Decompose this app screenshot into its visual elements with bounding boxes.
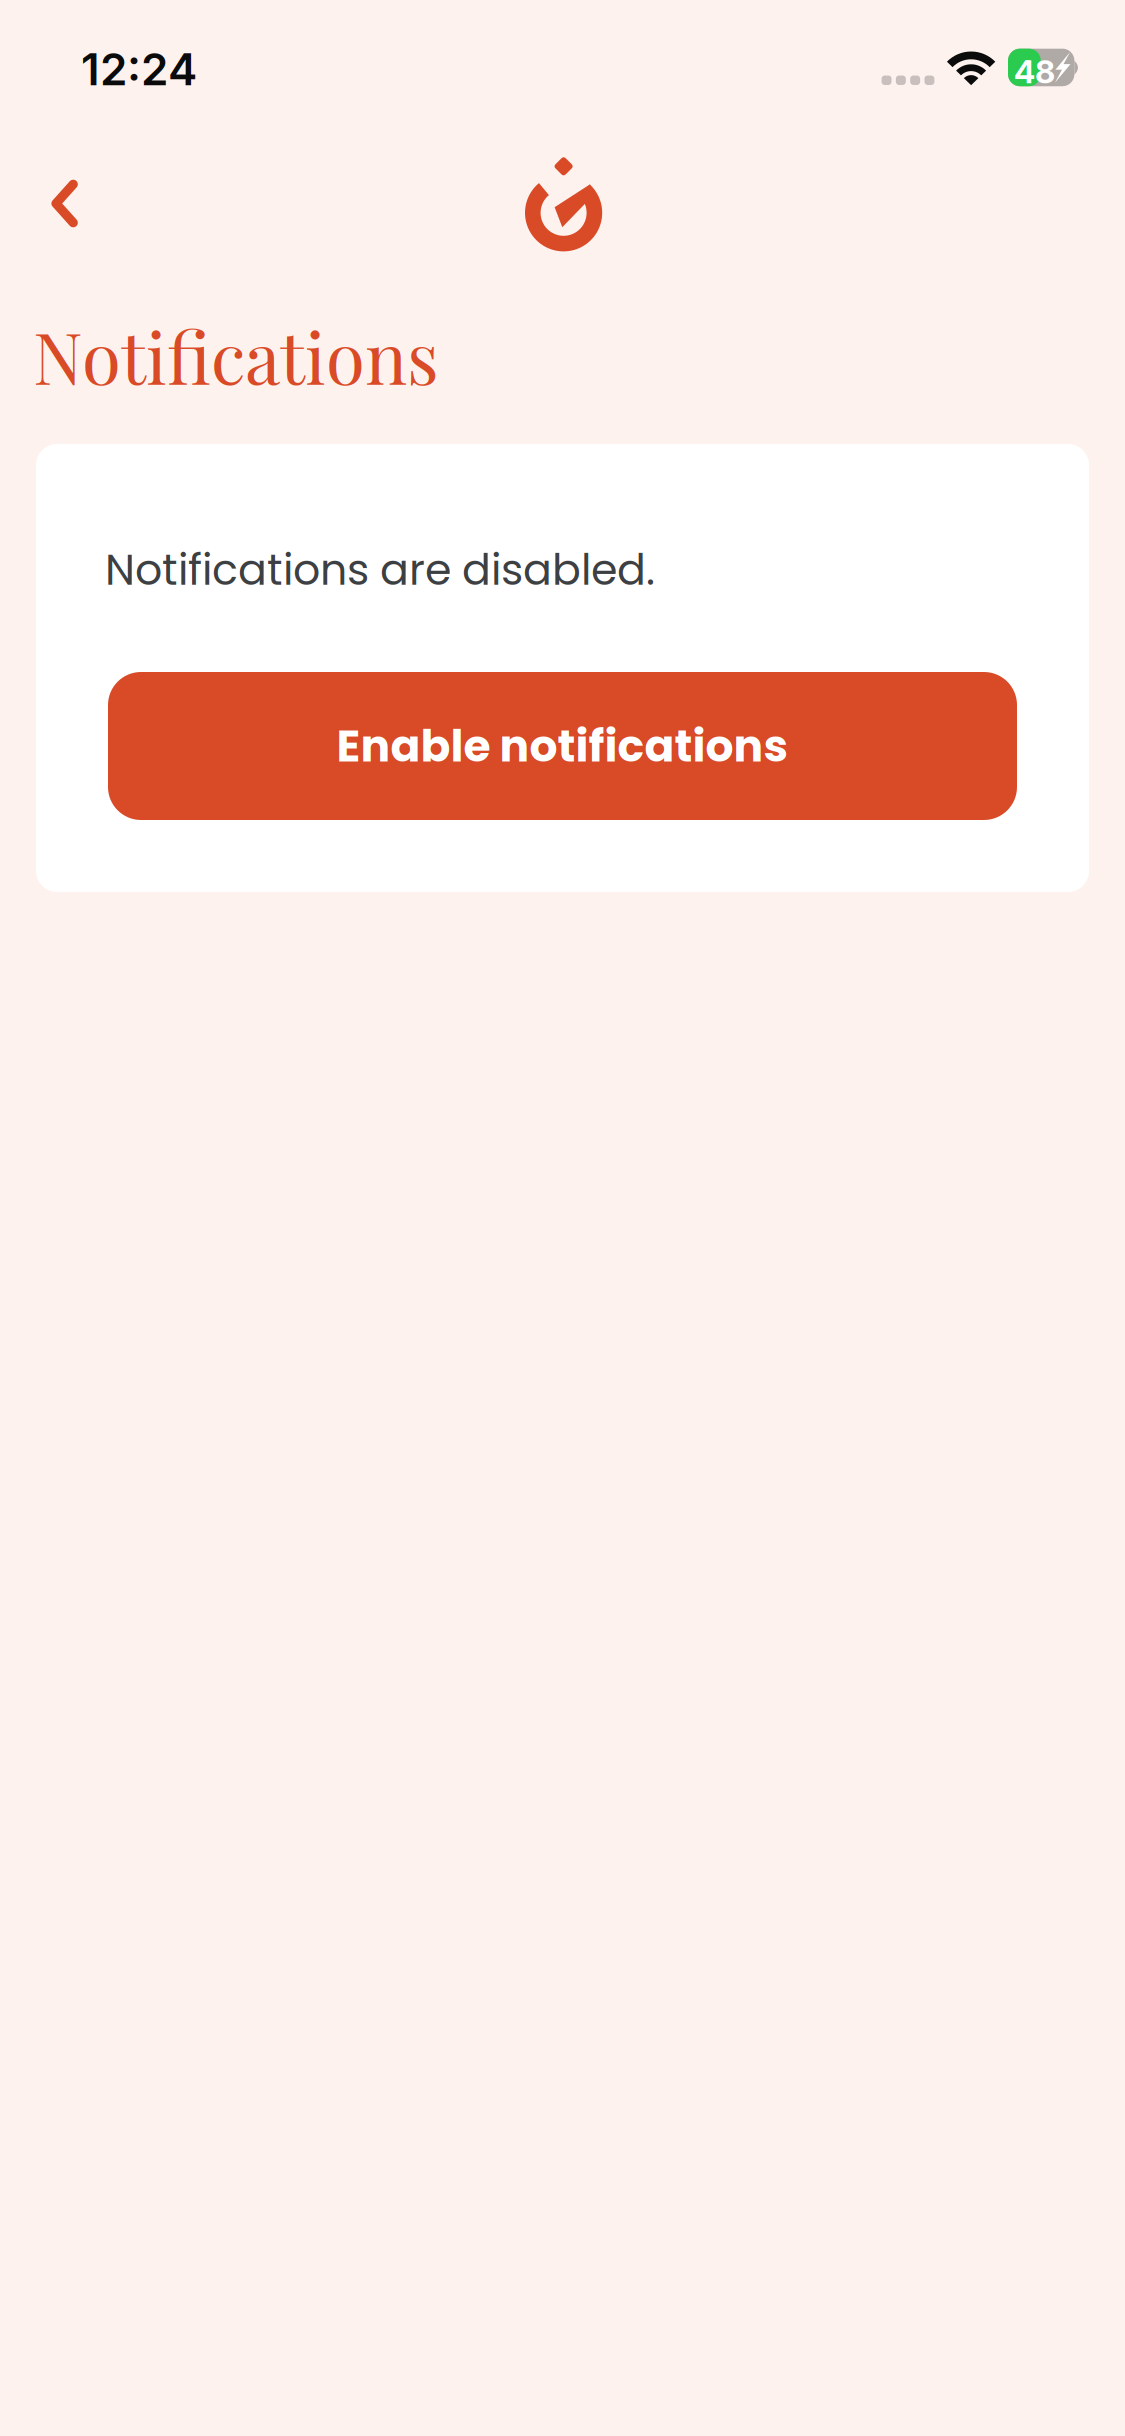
- staticText: 12:24: [81, 42, 197, 96]
- button[interactable]: Back: [22, 155, 107, 252]
- button[interactable]: Enable notifications: [108, 672, 1017, 820]
- staticText: Notifications are disabled.: [105, 540, 655, 600]
- staticText: Notifications: [33, 308, 439, 402]
- staticText: Enable notifications: [336, 715, 788, 777]
- staticText: 48: [1014, 52, 1055, 91]
